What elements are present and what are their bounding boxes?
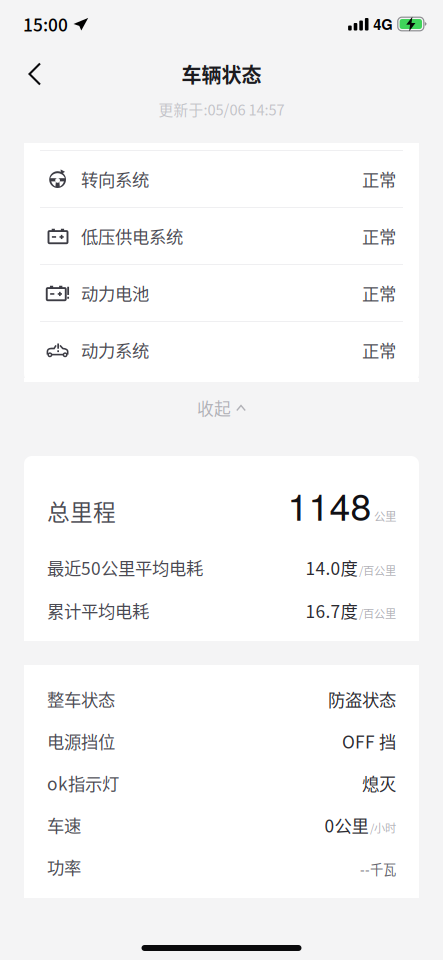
staticText: 动力电池	[81, 280, 149, 306]
staticText: 功率	[47, 854, 81, 880]
staticText: 车速	[47, 812, 81, 838]
button[interactable]: 低压供电系统	[24, 208, 419, 264]
staticText: 转向系统	[81, 166, 149, 192]
staticText: 更新于:05/06 14:57	[158, 98, 284, 120]
staticText: /百公里	[359, 605, 396, 621]
staticText: 公里	[374, 507, 396, 524]
staticText: 0公里	[324, 812, 368, 838]
staticText: --千瓦	[360, 859, 396, 878]
staticText: 累计平均电耗	[47, 598, 149, 623]
staticText: 15:00	[23, 11, 68, 37]
button[interactable]: 返回	[12, 48, 58, 100]
staticText: /小时	[370, 820, 396, 836]
staticText: 防盗状态	[328, 686, 396, 712]
staticText: 总里程	[47, 494, 116, 527]
button[interactable]: 收起	[0, 382, 443, 434]
staticText: 整车状态	[47, 686, 115, 712]
staticText: 16.7度	[305, 598, 357, 623]
button[interactable]: 动力电池	[24, 265, 419, 321]
staticText: 14.0度	[305, 555, 357, 580]
staticText: 收起	[197, 396, 231, 420]
staticText: 车辆状态	[181, 59, 261, 88]
button[interactable]: 转向系统	[24, 151, 419, 207]
staticText: ok指示灯	[47, 770, 119, 796]
staticText: 电源挡位	[47, 728, 115, 754]
staticText: 正常	[362, 280, 396, 306]
staticText: 最近50公里平均电耗	[47, 555, 203, 580]
staticText: OFF 挡	[342, 728, 396, 754]
staticText: 正常	[362, 166, 396, 192]
staticText: 熄灭	[362, 770, 396, 796]
button[interactable]: 动力系统	[24, 322, 419, 378]
staticText: 低压供电系统	[81, 223, 183, 249]
staticText: 4G	[373, 13, 392, 34]
staticText: 正常	[362, 223, 396, 249]
staticText: 正常	[362, 337, 396, 363]
staticText: 1148	[287, 478, 371, 531]
staticText: /百公里	[359, 562, 396, 578]
staticText: 动力系统	[81, 337, 149, 363]
